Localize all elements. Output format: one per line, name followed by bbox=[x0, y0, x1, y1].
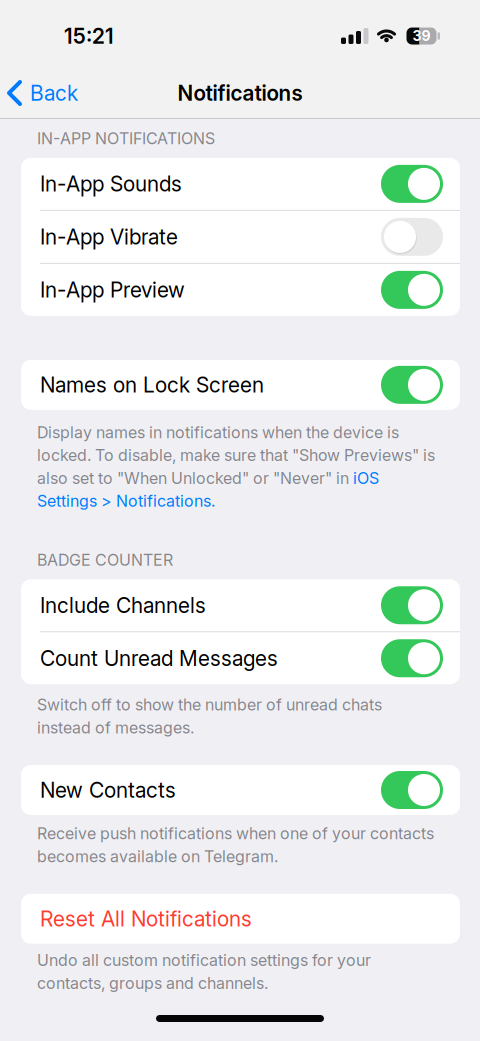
button[interactable]: Back bbox=[0, 80, 78, 106]
staticText: Include Channels bbox=[40, 593, 206, 618]
staticText: In-App Preview bbox=[40, 277, 185, 302]
staticText: BADGE COUNTER bbox=[37, 550, 173, 569]
button[interactable]: New Contacts bbox=[21, 765, 460, 815]
button[interactable]: Reset All Notifications bbox=[21, 894, 460, 944]
button[interactable]: In-App Vibrate bbox=[21, 211, 460, 263]
staticText: also set to "When Unlocked" or "Never" i… bbox=[37, 469, 353, 487]
staticText: contacts, groups and channels. bbox=[37, 974, 268, 992]
staticText: In-App Sounds bbox=[40, 171, 182, 196]
staticText: IN-APP NOTIFICATIONS bbox=[37, 129, 215, 148]
staticText: iOS bbox=[353, 469, 379, 487]
staticText: Reset All Notifications bbox=[40, 906, 252, 931]
button[interactable]: Settings > Notifications. bbox=[37, 491, 215, 510]
staticText: Names on Lock Screen bbox=[40, 372, 264, 397]
staticText: locked. To disable, make sure that "Show… bbox=[37, 446, 435, 465]
staticText: Receive push notifications when one of y… bbox=[37, 824, 434, 843]
staticText: Count Unread Messages bbox=[40, 646, 278, 671]
staticText: Back bbox=[30, 81, 78, 105]
staticText: instead of messages. bbox=[37, 718, 194, 737]
button[interactable]: Names on Lock Screen bbox=[21, 360, 460, 410]
staticText: Settings > Notifications. bbox=[37, 491, 215, 510]
staticText: Switch off to show the number of unread … bbox=[37, 695, 382, 714]
staticText: becomes available on Telegram. bbox=[37, 847, 278, 866]
button[interactable]: In-App Preview bbox=[21, 264, 460, 316]
staticText: 15:21 bbox=[64, 24, 114, 48]
staticText: 39 bbox=[412, 28, 430, 44]
button[interactable]: In-App Sounds bbox=[21, 158, 460, 210]
button[interactable]: Count Unread Messages bbox=[21, 632, 460, 684]
staticText: Undo all custom notification settings fo… bbox=[37, 951, 371, 970]
staticText: Notifications bbox=[177, 81, 302, 105]
button[interactable]: iOS bbox=[353, 469, 379, 487]
staticText: In-App Vibrate bbox=[40, 224, 178, 249]
staticText: New Contacts bbox=[40, 778, 176, 802]
button[interactable]: Include Channels bbox=[21, 579, 460, 631]
staticText: Display names in notifications when the … bbox=[37, 423, 399, 442]
